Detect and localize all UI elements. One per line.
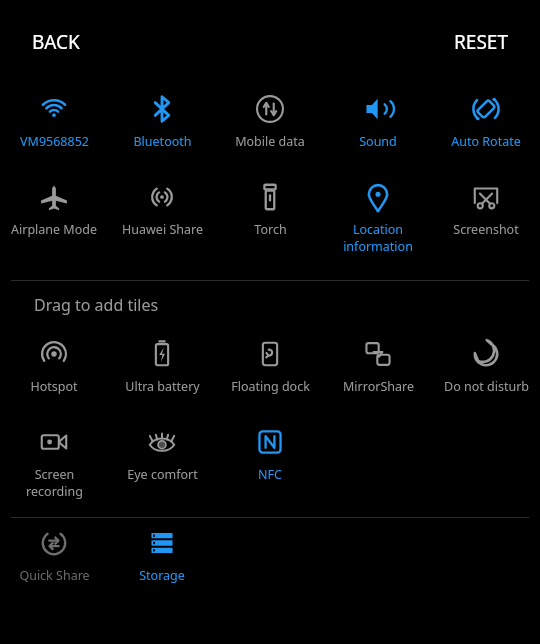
button[interactable]: Sound	[324, 84, 432, 172]
staticText: RESET	[454, 29, 508, 55]
button[interactable]: Ultra battery	[108, 329, 216, 417]
staticText: Quick Share	[19, 567, 90, 584]
staticText: Auto Rotate	[451, 133, 521, 150]
button[interactable]: Huawei Share	[108, 172, 216, 272]
button[interactable]: Eye comfort	[108, 417, 216, 517]
staticText: Eye comfort	[127, 466, 198, 483]
button[interactable]: Auto Rotate	[432, 84, 540, 172]
button[interactable]: NFC	[216, 417, 324, 517]
button[interactable]: Mobile data	[216, 84, 324, 172]
staticText: Torch	[254, 221, 287, 238]
staticText: Screenshot	[453, 221, 519, 238]
button[interactable]: Floating dock	[216, 329, 324, 417]
button[interactable]: Quick Share	[0, 518, 108, 606]
button[interactable]: RESET	[440, 19, 522, 65]
button[interactable]: Screenshot	[432, 172, 540, 272]
button[interactable]: Hotspot	[0, 329, 108, 417]
staticText: Location information	[343, 221, 413, 254]
staticText: Floating dock	[231, 378, 310, 395]
staticText: Storage	[139, 567, 185, 584]
staticText: Huawei Share	[122, 221, 203, 238]
staticText: VM9568852	[20, 133, 89, 150]
staticText: Sound	[359, 133, 397, 150]
staticText: Screen recording	[26, 466, 83, 499]
button[interactable]: MirrorShare	[324, 329, 432, 417]
button[interactable]: Storage	[108, 518, 216, 606]
button[interactable]: Bluetooth	[108, 84, 216, 172]
staticText: Ultra battery	[125, 378, 200, 395]
staticText: NFC	[258, 466, 282, 483]
staticText: BACK	[32, 29, 80, 55]
button[interactable]: Location information	[324, 172, 432, 272]
staticText: Drag to add tiles	[34, 294, 159, 316]
staticText: Do not disturb	[444, 378, 529, 395]
staticText: Bluetooth	[133, 133, 192, 150]
staticText: Mobile data	[235, 133, 305, 150]
button[interactable]: Screen recording	[0, 417, 108, 517]
button[interactable]: Do not disturb	[432, 329, 540, 417]
staticText: Hotspot	[30, 378, 78, 395]
button[interactable]: Torch	[216, 172, 324, 272]
staticText: MirrorShare	[343, 378, 414, 395]
button[interactable]: VM9568852	[0, 84, 108, 172]
button[interactable]: Airplane Mode	[0, 172, 108, 272]
button[interactable]: BACK	[18, 19, 94, 65]
staticText: Airplane Mode	[11, 221, 97, 238]
